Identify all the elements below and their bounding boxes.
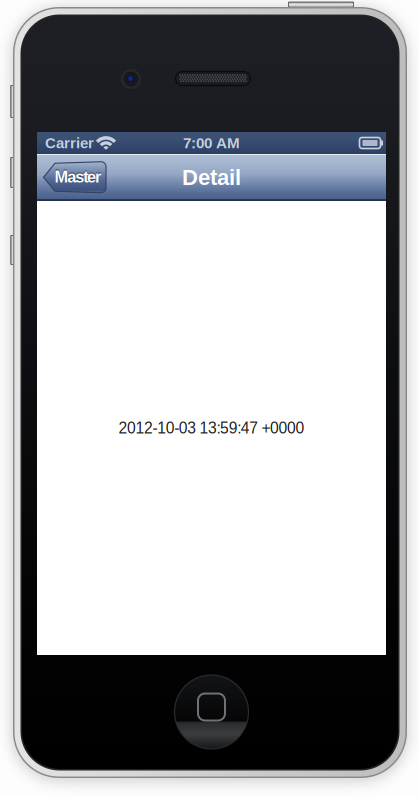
- staticText: 2012-10-03 13:59:47 +0000: [118, 419, 305, 437]
- staticText: Carrier: [45, 135, 94, 151]
- staticText: Master: [54, 168, 101, 186]
- button[interactable]: Back to Master: [42, 162, 106, 193]
- staticText: Master: [54, 167, 101, 185]
- staticText: Detail: [182, 165, 241, 190]
- staticText: 7:00 AM: [183, 134, 240, 151]
